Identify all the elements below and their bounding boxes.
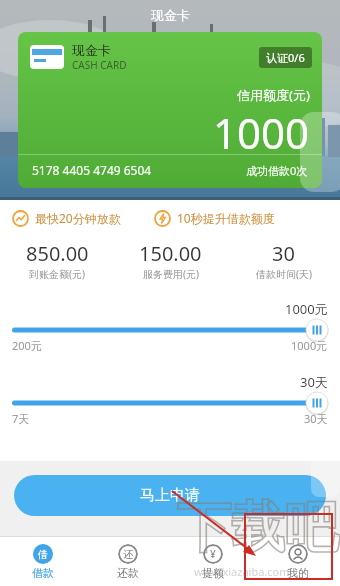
button[interactable]: ¥ — [170, 537, 255, 586]
staticText: 1000 — [213, 104, 310, 161]
staticText: 还 — [123, 548, 133, 561]
button[interactable]: 我的 — [255, 537, 340, 586]
staticText: 借 — [38, 548, 48, 561]
staticText: CASH CARD — [72, 58, 127, 72]
button[interactable]: 借 — [0, 537, 85, 586]
staticText: 我的 — [287, 566, 309, 580]
staticText: 认证0/6 — [266, 50, 305, 65]
staticText: 下载吧 — [177, 494, 339, 562]
staticText: 200元 — [12, 338, 42, 353]
staticText: 信用额度(元) — [237, 86, 310, 104]
staticText: 7天 — [12, 411, 30, 426]
staticText: ¥ — [210, 547, 216, 561]
staticText: 30天 — [300, 373, 328, 391]
button[interactable]: 还 — [85, 537, 170, 586]
staticText: 现金卡 — [72, 42, 111, 58]
staticText: 150.00 — [139, 240, 202, 267]
staticText: 马上申请 — [140, 486, 200, 505]
staticText: 借款 — [32, 566, 54, 580]
staticText: 还款 — [117, 566, 139, 580]
staticText: 30天 — [304, 411, 328, 426]
staticText: 现金卡 — [151, 7, 190, 23]
staticText: 到账金额(元) — [29, 267, 85, 281]
staticText: 30 — [272, 240, 295, 267]
button[interactable]: 认证0/6 — [259, 47, 312, 68]
staticText: 1000元 — [291, 338, 328, 353]
button[interactable]: 马上申请 — [14, 475, 326, 516]
staticText: 成功借款0次 — [246, 163, 308, 178]
staticText: 最快20分钟放款 — [35, 210, 121, 226]
staticText: 850.00 — [26, 240, 89, 267]
button[interactable]: 现金卡 — [18, 32, 322, 188]
staticText: 服务费用(元) — [143, 267, 199, 281]
staticText: 提额 — [202, 566, 224, 580]
staticText: 借款时间(天) — [256, 267, 312, 281]
staticText: www.xiazaiba.com — [194, 564, 290, 579]
staticText: 5178 4405 4749 6504 — [32, 162, 152, 178]
staticText: 10秒提升借款额度 — [177, 210, 275, 226]
staticText: 1000元 — [285, 300, 328, 318]
